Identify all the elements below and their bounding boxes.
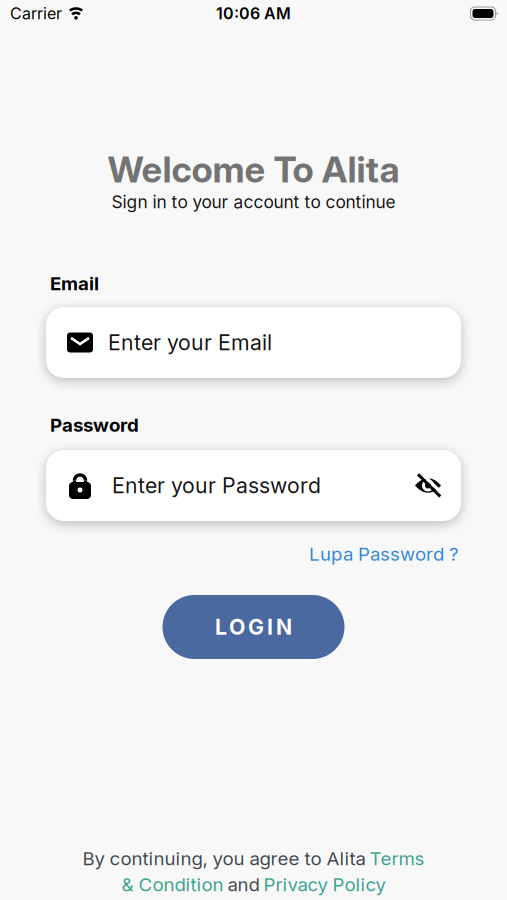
staticText: Enter your Password bbox=[112, 473, 321, 498]
staticText: Password bbox=[50, 414, 139, 436]
button[interactable]: Terms bbox=[369, 847, 424, 869]
button[interactable]: Enter your Email bbox=[46, 307, 461, 378]
staticText: & Condition bbox=[121, 873, 223, 895]
button[interactable]: LOGIN bbox=[162, 595, 344, 659]
staticText: Email bbox=[50, 272, 99, 294]
staticText: LOGIN bbox=[215, 614, 292, 640]
button[interactable]: Enter your Password bbox=[46, 450, 461, 521]
staticText: Lupa Password ? bbox=[309, 543, 459, 565]
staticText: Enter your Email bbox=[108, 330, 272, 355]
button[interactable]: Privacy Policy bbox=[263, 873, 385, 895]
staticText: Privacy Policy bbox=[263, 873, 385, 895]
staticText: Sign in to your account to continue bbox=[111, 192, 395, 212]
staticText: Welcome To Alita bbox=[107, 148, 399, 191]
staticText: By continuing, you agree to Alita bbox=[82, 847, 365, 869]
button[interactable]: & Condition bbox=[121, 873, 223, 895]
button[interactable]: Lupa Password ? bbox=[309, 543, 459, 565]
staticText: Carrier bbox=[10, 4, 62, 23]
staticText: Terms bbox=[369, 847, 424, 869]
staticText: and bbox=[227, 873, 259, 895]
button[interactable]: Show password bbox=[414, 473, 461, 497]
staticText: 10:06 AM bbox=[216, 4, 291, 23]
